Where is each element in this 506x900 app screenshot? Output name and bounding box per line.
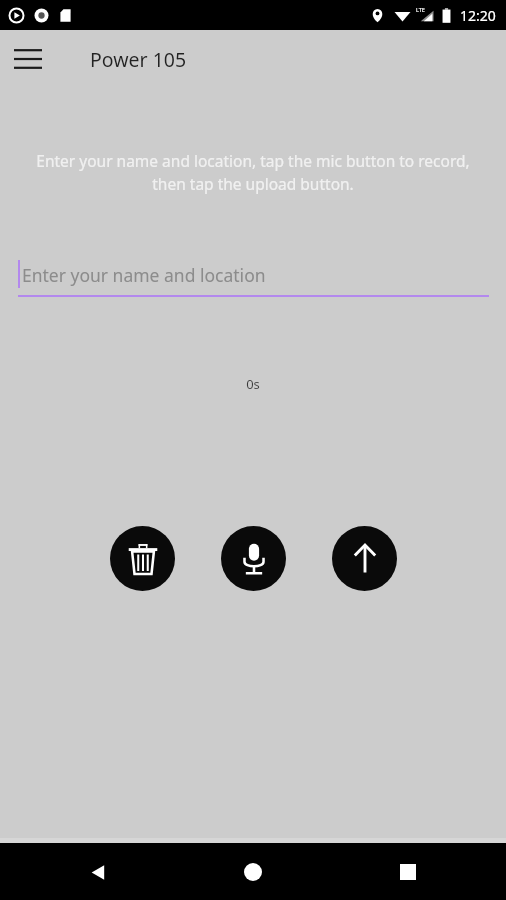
button[interactable]: Open navigation menu: [6, 37, 50, 81]
staticText: Power 105: [90, 46, 187, 73]
button[interactable]: Delete recording: [110, 526, 175, 591]
staticText: 0s: [0, 375, 506, 393]
button[interactable]: Back: [74, 848, 122, 896]
button[interactable]: Recent apps: [384, 848, 432, 896]
staticText: Enter your name and location: [22, 263, 266, 287]
button[interactable]: Home: [229, 848, 277, 896]
staticText: Enter your name and location, tap the mi…: [26, 150, 480, 195]
button[interactable]: Record: [221, 526, 286, 591]
staticText: LTE: [416, 6, 425, 13]
staticText: 12:20: [460, 6, 496, 25]
button[interactable]: Upload: [332, 526, 397, 591]
button[interactable]: Enter your name and location: [18, 257, 489, 297]
